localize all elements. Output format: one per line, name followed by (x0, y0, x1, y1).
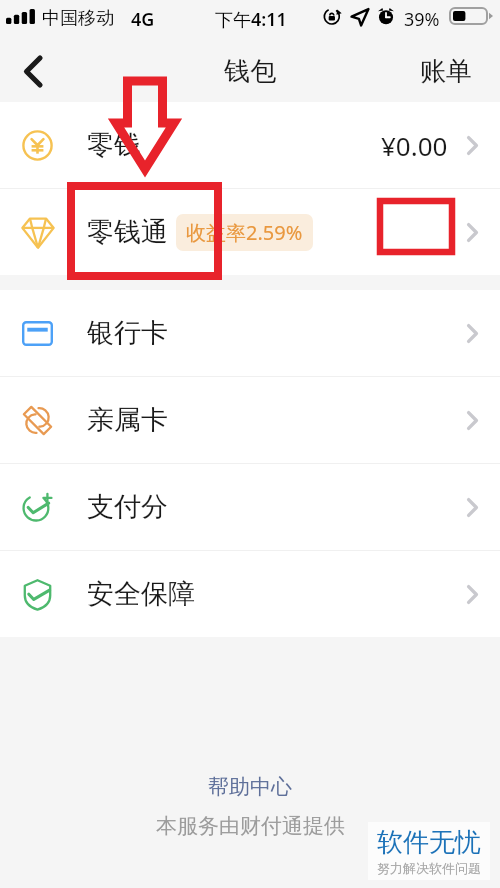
button[interactable]: Back (0, 40, 62, 102)
staticText: ¥0.00 (381, 128, 448, 163)
staticText: 零钱 (87, 128, 141, 162)
staticText: 支付分 (87, 490, 168, 524)
button[interactable]: 银行卡 (0, 290, 500, 376)
staticText: 努力解决软件问题 (377, 860, 481, 876)
staticText: 安全保障 (87, 577, 195, 611)
staticText: 收益率2.59% (186, 219, 303, 246)
button[interactable]: 安全保障 (0, 551, 500, 637)
button[interactable]: 账单 (392, 41, 500, 102)
staticText: 4G (131, 7, 155, 32)
button[interactable]: 支付分 (0, 464, 500, 550)
staticText: 零钱通 (87, 215, 168, 249)
staticText: 帮助中心 (208, 774, 292, 800)
button[interactable]: 亲属卡 (0, 377, 500, 463)
staticText: 软件无忧 (377, 826, 481, 859)
staticText: 银行卡 (87, 316, 168, 350)
staticText: 39% (404, 7, 440, 32)
staticText: 下午4:11 (215, 7, 287, 32)
staticText: 中国移动 (42, 7, 114, 30)
button[interactable]: 零钱 (0, 102, 500, 188)
button[interactable]: 零钱通 (0, 189, 500, 275)
staticText: 钱包 (224, 55, 276, 88)
staticText: 亲属卡 (87, 403, 168, 437)
staticText: 本服务由财付通提供 (156, 813, 345, 839)
staticText: 账单 (420, 55, 472, 88)
button[interactable]: 帮助中心 (198, 771, 302, 803)
